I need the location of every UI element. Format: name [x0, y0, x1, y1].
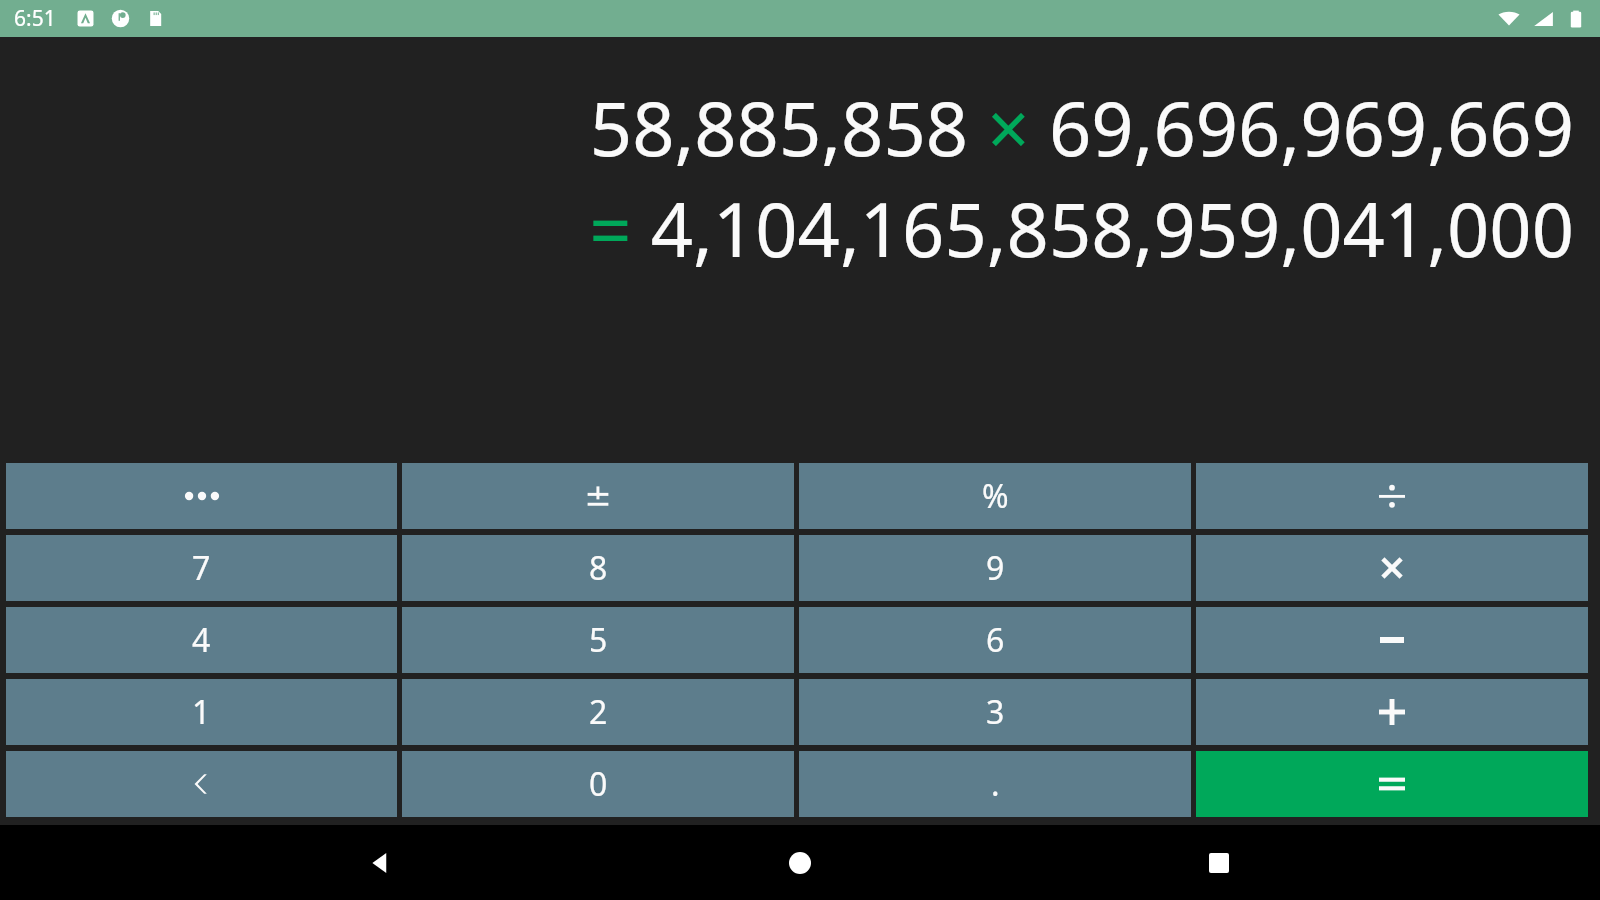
- button[interactable]: Equals: [1196, 751, 1588, 817]
- button[interactable]: Toggle sign: [402, 463, 794, 529]
- button[interactable]: Delete: [6, 751, 397, 817]
- button[interactable]: More options: [6, 463, 397, 529]
- staticText: 2: [589, 690, 608, 734]
- button[interactable]: %: [799, 463, 1191, 529]
- button[interactable]: 0: [402, 751, 794, 817]
- button[interactable]: 5: [402, 607, 794, 673]
- button[interactable]: 4: [6, 607, 397, 673]
- staticText: 6: [986, 618, 1005, 662]
- button[interactable]: 6: [799, 607, 1191, 673]
- staticText: 7: [192, 546, 211, 590]
- button[interactable]: 1: [6, 679, 397, 745]
- button[interactable]: 7: [6, 535, 397, 601]
- staticText: 58,885,858 × 69,696,969,669: [589, 77, 1574, 178]
- staticText: = 4,104,165,858,959,041,000: [589, 178, 1574, 279]
- button[interactable]: 3: [799, 679, 1191, 745]
- button[interactable]: Back: [343, 825, 419, 900]
- staticText: 3: [986, 690, 1005, 734]
- staticText: 9: [986, 546, 1005, 590]
- button[interactable]: 9: [799, 535, 1191, 601]
- staticText: 8: [589, 546, 608, 590]
- staticText: %: [982, 474, 1009, 518]
- staticText: 4: [192, 618, 211, 662]
- staticText: 5: [589, 618, 608, 662]
- staticText: 0: [589, 762, 608, 806]
- staticText: 1: [192, 690, 211, 734]
- button[interactable]: 2: [402, 679, 794, 745]
- button[interactable]: Recent apps: [1181, 825, 1257, 900]
- staticText: .: [991, 762, 1000, 806]
- button[interactable]: Divide: [1196, 463, 1588, 529]
- button[interactable]: Multiply: [1196, 535, 1588, 601]
- button[interactable]: 8: [402, 535, 794, 601]
- button[interactable]: Add: [1196, 679, 1588, 745]
- button[interactable]: Home: [762, 825, 838, 900]
- button[interactable]: Subtract: [1196, 607, 1588, 673]
- button[interactable]: .: [799, 751, 1191, 817]
- staticText: 6:51: [14, 4, 56, 33]
